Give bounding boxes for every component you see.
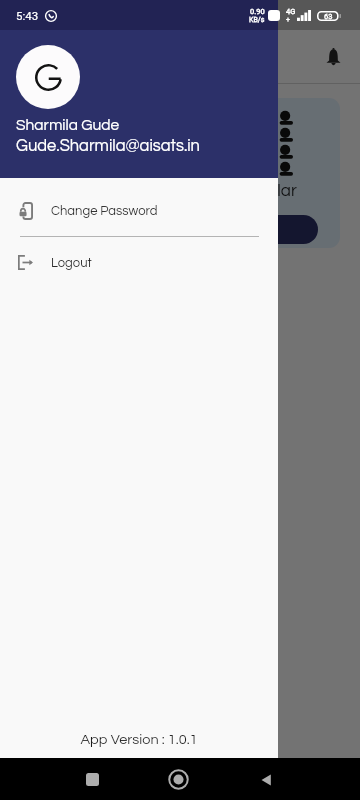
button[interactable]: Logout bbox=[0, 237, 278, 288]
staticText: Change Password bbox=[51, 204, 158, 217]
staticText: 4G bbox=[286, 7, 296, 16]
button[interactable]: Recents bbox=[86, 773, 99, 786]
staticText: + bbox=[286, 16, 290, 24]
staticText: KB/s bbox=[249, 16, 265, 24]
button[interactable]: Back bbox=[258, 772, 274, 788]
staticText: Sharmila Gude bbox=[16, 117, 120, 133]
staticText: Regular bbox=[237, 182, 297, 200]
button[interactable] bbox=[258, 215, 318, 244]
staticText: 5:43 bbox=[16, 9, 39, 22]
staticText: 0.90 bbox=[250, 7, 265, 16]
button[interactable]: Notifications bbox=[317, 41, 349, 73]
staticText: 63 bbox=[324, 12, 333, 21]
staticText: App Version : 1.0.1 bbox=[80, 732, 198, 747]
button[interactable]: Change Password bbox=[0, 185, 278, 236]
staticText: Gude.Sharmila@aisats.in bbox=[16, 137, 200, 154]
staticText: Logout bbox=[51, 256, 92, 269]
button[interactable]: Home bbox=[168, 769, 189, 790]
